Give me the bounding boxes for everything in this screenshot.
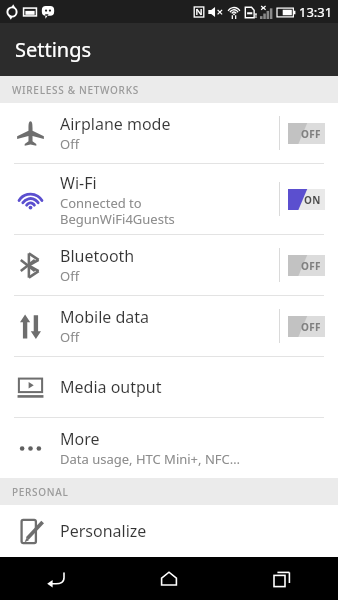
staticText: ON: [304, 193, 321, 207]
staticText: Wi-Fi: [60, 172, 97, 194]
button[interactable]: Recents: [225, 557, 338, 600]
button[interactable]: Personalize: [0, 505, 338, 557]
button[interactable]: Wi-Fi switch: [288, 189, 325, 210]
staticText: Airplane mode: [60, 113, 171, 135]
staticText: Off: [60, 267, 80, 285]
staticText: Settings: [15, 36, 92, 63]
staticText: Connected to BegunWiFi4Guests: [60, 194, 175, 227]
staticText: Off: [60, 135, 80, 153]
staticText: Data usage, HTC Mini+, NFC…: [60, 450, 241, 468]
staticText: Personalize: [60, 520, 147, 542]
button[interactable]: Airplane mode: [0, 103, 338, 163]
staticText: OFF: [301, 259, 321, 273]
staticText: Off: [60, 328, 80, 346]
button[interactable]: Mobile data: [0, 296, 338, 356]
button[interactable]: Back: [0, 557, 112, 600]
staticText: OFF: [301, 127, 321, 141]
staticText: Bluetooth: [60, 245, 135, 267]
button[interactable]: Mobile data switch: [288, 316, 325, 337]
staticText: Media output: [60, 376, 162, 398]
staticText: OFF: [301, 320, 321, 334]
button[interactable]: Bluetooth switch: [288, 255, 325, 276]
button[interactable]: Home: [112, 557, 225, 600]
staticText: 13:31: [299, 3, 333, 21]
button[interactable]: More: [0, 418, 338, 478]
button[interactable]: Wi-Fi: [0, 164, 338, 234]
button[interactable]: Bluetooth: [0, 235, 338, 295]
staticText: Mobile data: [60, 306, 150, 328]
staticText: WIRELESS & NETWORKS: [12, 83, 139, 97]
staticText: PERSONAL: [12, 485, 69, 499]
staticText: More: [60, 428, 100, 450]
button[interactable]: Media output: [0, 357, 338, 417]
button[interactable]: Airplane mode switch: [288, 123, 325, 144]
